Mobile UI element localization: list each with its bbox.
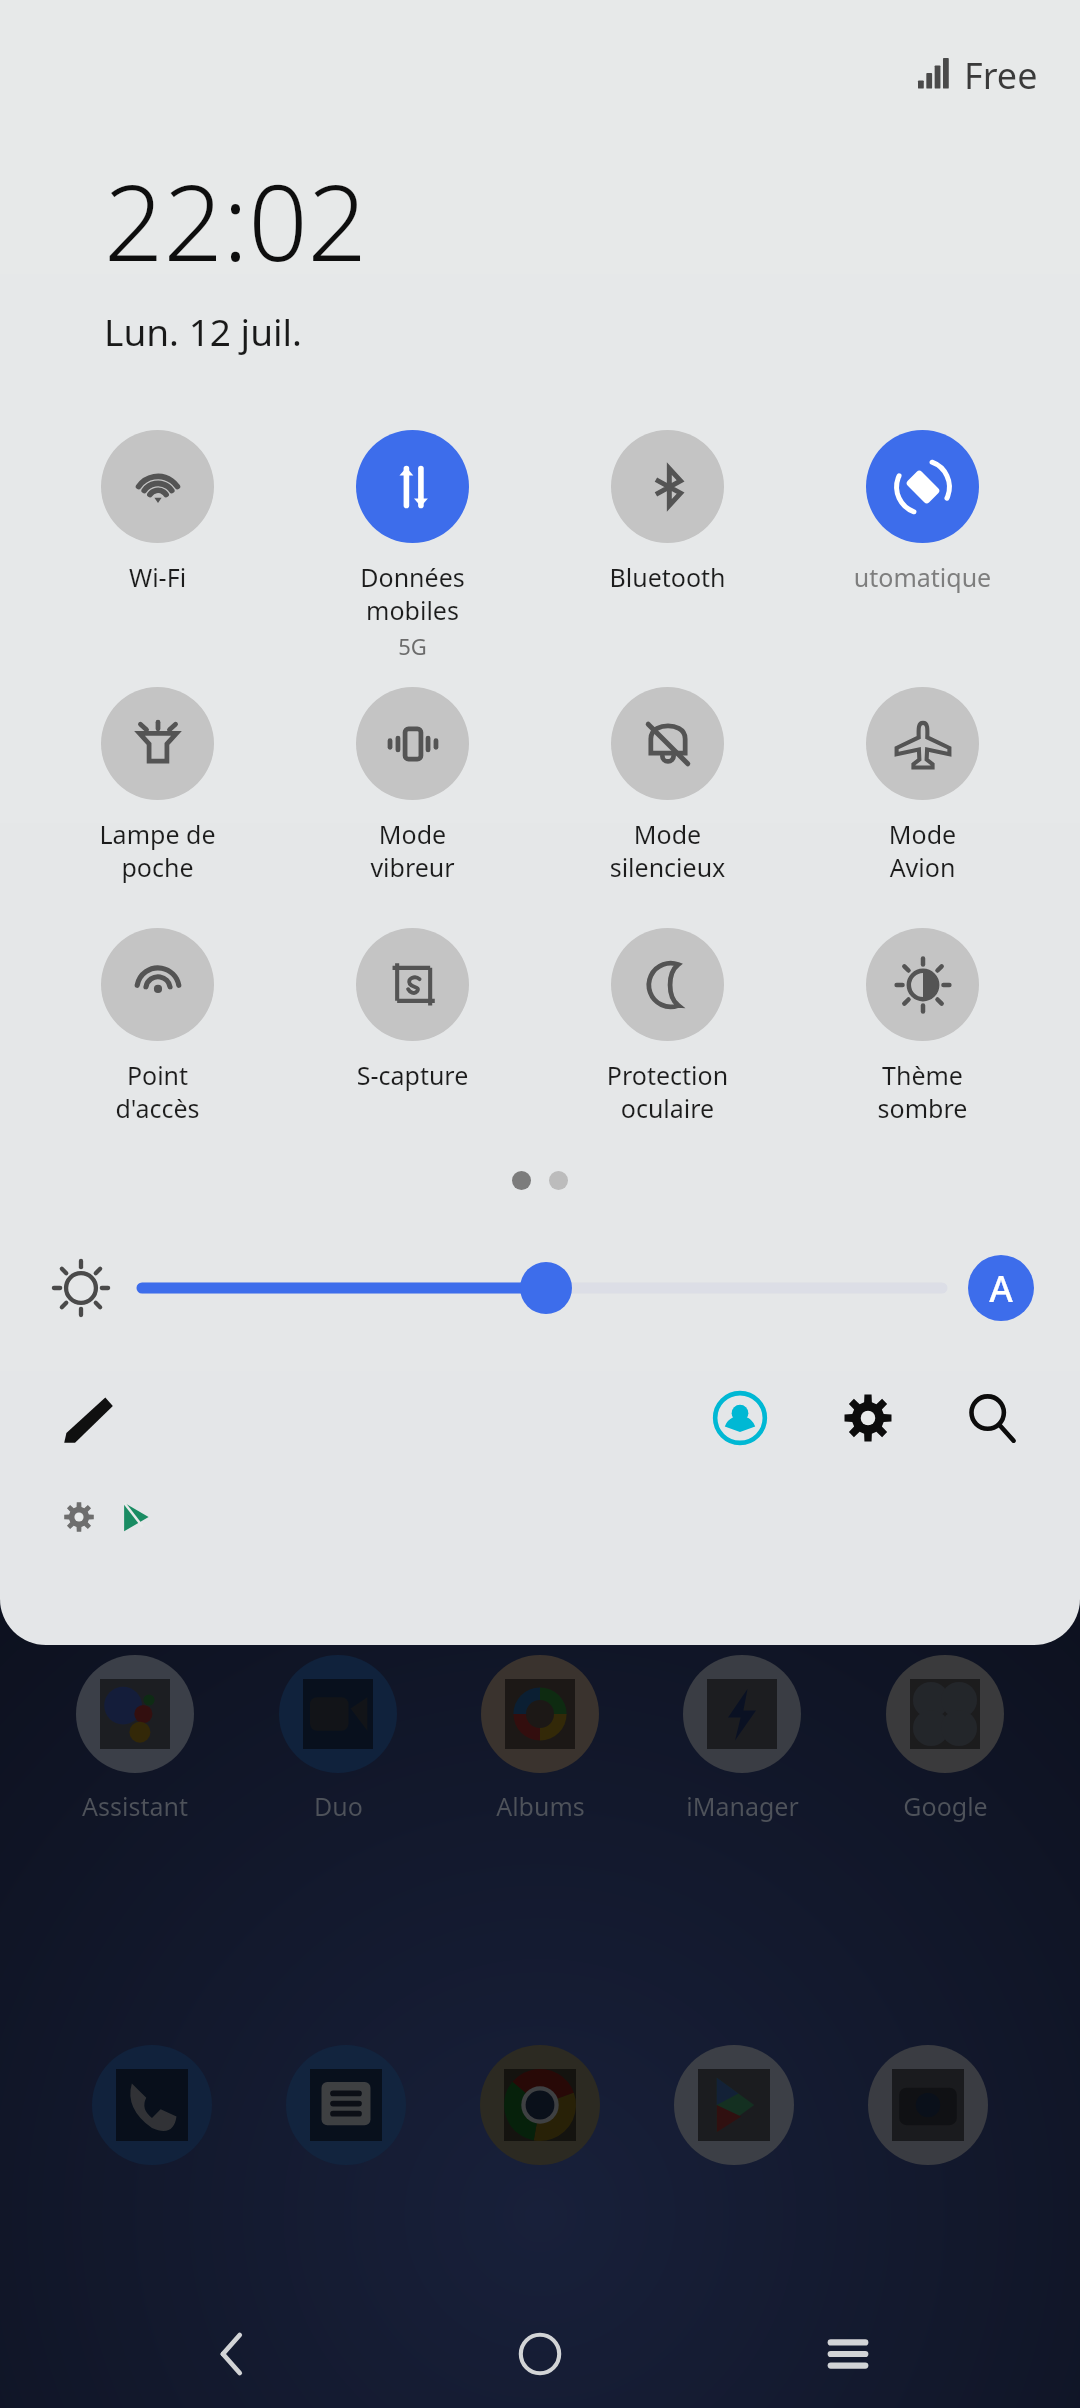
button[interactable]: Données mobiles xyxy=(285,430,540,661)
button[interactable]: Bluetooth xyxy=(540,430,795,594)
button[interactable]: Mode Avion xyxy=(795,687,1050,884)
button[interactable]: Mode vibreur xyxy=(285,687,540,884)
staticText: Lun. 12 juil. xyxy=(104,306,303,356)
button[interactable]: S-capture xyxy=(285,928,540,1092)
staticText: 5G xyxy=(285,631,540,661)
button[interactable]: Wi-Fi xyxy=(30,430,285,594)
staticText: iManager xyxy=(686,1789,799,1823)
staticText: Assistant xyxy=(82,1789,188,1823)
button[interactable]: Brightness xyxy=(46,1253,116,1323)
staticText: utomatique xyxy=(795,560,1050,593)
staticText: Thème sombre xyxy=(795,1058,1050,1125)
staticText: Wi-Fi xyxy=(30,560,285,594)
button[interactable]: Mode silencieux xyxy=(540,687,795,884)
staticText: Google xyxy=(903,1789,988,1823)
button[interactable]: Point d'accès xyxy=(30,928,285,1125)
button[interactable]: A xyxy=(968,1255,1034,1321)
button[interactable]: Albums xyxy=(455,1655,625,1823)
staticText: Free xyxy=(964,51,1038,100)
staticText: Mode vibreur xyxy=(285,817,540,884)
button[interactable]: Lampe de poche xyxy=(30,687,285,884)
button[interactable]: Home xyxy=(465,2300,615,2408)
button[interactable]: Messages xyxy=(286,2045,406,2165)
staticText: Bluetooth xyxy=(540,560,795,594)
staticText: 22:02 xyxy=(104,150,367,292)
staticText: Point d'accès xyxy=(30,1058,285,1125)
button[interactable]: Chrome xyxy=(480,2045,600,2165)
button[interactable]: Recent apps xyxy=(773,2300,923,2408)
button[interactable]: iManager xyxy=(657,1655,827,1823)
staticText: Mode Avion xyxy=(795,817,1050,884)
button[interactable]: Assistant xyxy=(50,1655,220,1823)
staticText: Mode silencieux xyxy=(540,817,795,884)
staticText: Duo xyxy=(314,1789,363,1823)
staticText: S-capture xyxy=(285,1058,540,1092)
button[interactable]: Back xyxy=(158,2300,308,2408)
button[interactable]: Camera xyxy=(868,2045,988,2165)
button[interactable]: utomatique xyxy=(795,430,1050,593)
button[interactable]: Search xyxy=(944,1370,1040,1466)
button[interactable]: Google xyxy=(860,1655,1030,1823)
button[interactable]: Settings xyxy=(820,1370,916,1466)
button[interactable]: Edit xyxy=(40,1370,136,1466)
button[interactable]: Protection oculaire xyxy=(540,928,795,1125)
staticText: A xyxy=(989,1264,1013,1313)
button[interactable]: Duo xyxy=(253,1655,423,1823)
button[interactable]: Play Store xyxy=(674,2045,794,2165)
button[interactable]: Brightness slider xyxy=(142,1253,942,1323)
staticText: Albums xyxy=(496,1789,585,1823)
button[interactable]: Phone xyxy=(92,2045,212,2165)
staticText: Protection oculaire xyxy=(540,1058,795,1125)
button[interactable]: Thème sombre xyxy=(795,928,1050,1125)
button[interactable]: User account xyxy=(692,1370,788,1466)
staticText: Données mobiles xyxy=(285,560,540,627)
staticText: Lampe de poche xyxy=(30,817,285,884)
